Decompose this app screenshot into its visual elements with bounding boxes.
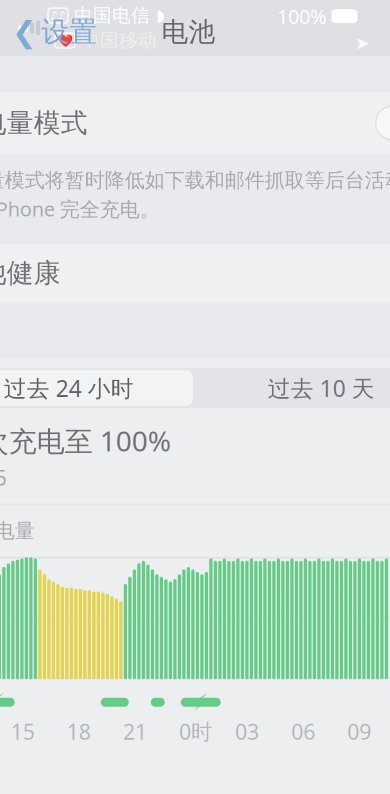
staticText: 过去 24 小时 [4, 373, 134, 403]
staticText: 18 [67, 717, 91, 745]
staticText: ⚡︎ [0, 689, 5, 715]
staticText: 21 [123, 717, 147, 745]
staticText: 06 [291, 717, 315, 745]
staticText: 中国电信 [74, 4, 150, 27]
staticText: 过去 10 天 [268, 373, 375, 403]
staticText: 电池电量 [0, 519, 35, 543]
button[interactable]: ❮ [0, 9, 97, 55]
staticText: ⚡︎ [193, 689, 209, 715]
staticText: 直至 iPhone 完全充电。 [0, 196, 160, 222]
button[interactable]: 过去 10 天 [195, 368, 390, 408]
staticText: 00:35 [0, 463, 7, 492]
button[interactable]: 低电量模式 [0, 92, 390, 154]
staticText: 100% [277, 3, 327, 29]
staticText: 15 [11, 717, 35, 745]
staticText: 上次充电至 100% [0, 422, 171, 459]
staticText: ❤️ [57, 34, 72, 47]
staticText: 03 [235, 717, 259, 745]
staticText: 09 [347, 717, 371, 745]
staticText: 0时 [179, 717, 212, 745]
staticText: ♪♪ [50, 9, 66, 22]
staticText: 低电量模式将暂时降低如下载和邮件抓取等后台活动， [0, 168, 390, 193]
staticText: ❮ [12, 15, 37, 49]
staticText: ➤ [355, 33, 370, 53]
staticText: 低电量模式 [0, 107, 88, 139]
button[interactable]: 过去 24 小时 [0, 368, 195, 408]
staticText: 7月21日 [0, 734, 28, 761]
staticText: 设置 [41, 15, 97, 49]
staticText: 7月22日 [140, 734, 213, 761]
staticText: 电池健康 [0, 257, 61, 289]
button[interactable]: 电池健康 [0, 244, 390, 302]
staticText: 中国移动 [81, 29, 157, 52]
staticText: 电池 [161, 16, 215, 48]
staticText: ◗ [156, 6, 164, 25]
